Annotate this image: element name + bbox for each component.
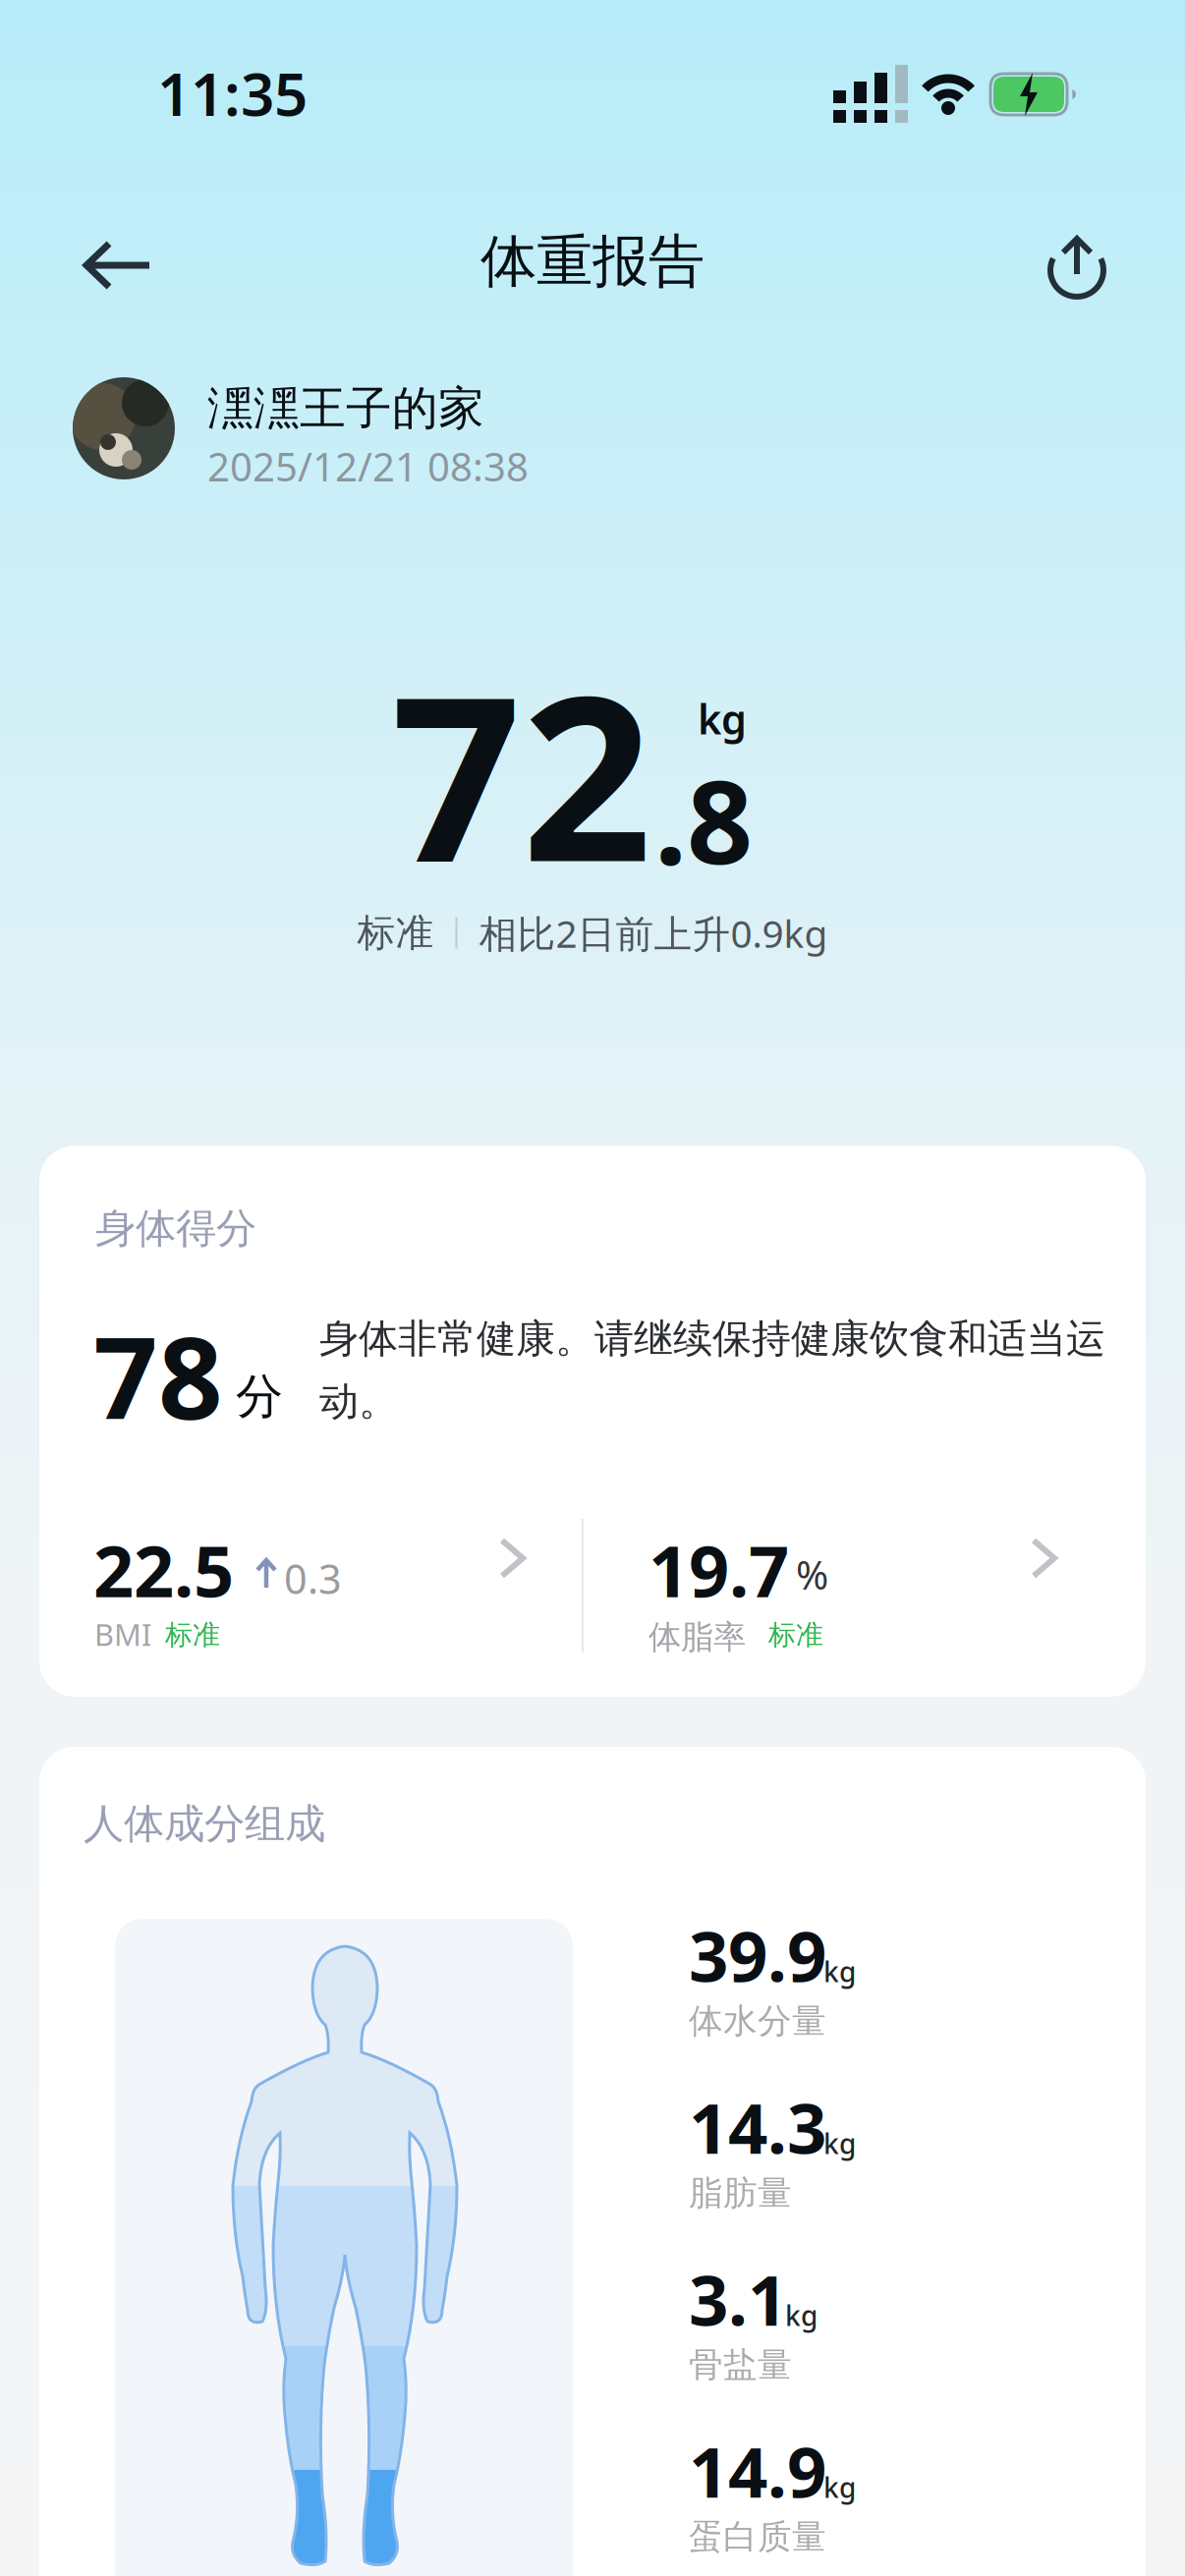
button[interactable]: 19.7 [649,1523,1087,1700]
staticText: % [796,1548,828,1601]
staticText: BMI [94,1614,151,1654]
staticText: 体水分量 [689,2000,826,2042]
staticText: 14.3 [689,2081,826,2173]
button[interactable]: 潶潶王子的家 [73,377,525,485]
button[interactable]: Back [77,235,159,296]
staticText: kg [823,1953,856,1990]
staticText: 相比2日前上升0.9kg [479,908,828,958]
staticText: 身体得分 [95,1204,256,1253]
staticText: 体脂率 [649,1617,746,1657]
staticText: 人体成分组成 [84,1799,325,1849]
staticText: 蛋白质量 [689,2516,826,2558]
button[interactable]: Share [1040,227,1114,304]
staticText: 身体非常健康。请继续保持健康饮食和适当运动。 [319,1315,1105,1426]
staticText: 骨盐量 [689,2344,792,2386]
staticText: 0.3 [284,1551,342,1605]
staticText: 标准 [165,1618,220,1652]
staticText: 脂肪量 [689,2172,792,2214]
staticText: kg [785,2297,818,2334]
staticText: 分 [236,1368,283,1426]
staticText: kg [698,692,747,746]
staticText: 标准 [768,1618,823,1652]
staticText: 39.9 [689,1909,826,2001]
staticText: 72 [391,622,652,925]
staticText: 3.1 [689,2253,787,2345]
staticText: 78 [93,1301,223,1450]
staticText: 标准 [357,910,434,956]
staticText: 潶潶王子的家 [207,380,484,437]
staticText: 22.5 [93,1523,234,1617]
staticText: .8 [654,743,753,896]
staticText: 19.7 [649,1523,789,1617]
button[interactable]: 22.5 [93,1523,582,1700]
staticText: kg [823,2469,856,2505]
staticText: kg [823,2125,856,2162]
staticText: 体重报告 [480,227,705,296]
staticText: 2025/12/21 08:38 [207,440,529,492]
staticText: 11:35 [157,54,308,132]
staticText: 14.9 [689,2425,826,2517]
